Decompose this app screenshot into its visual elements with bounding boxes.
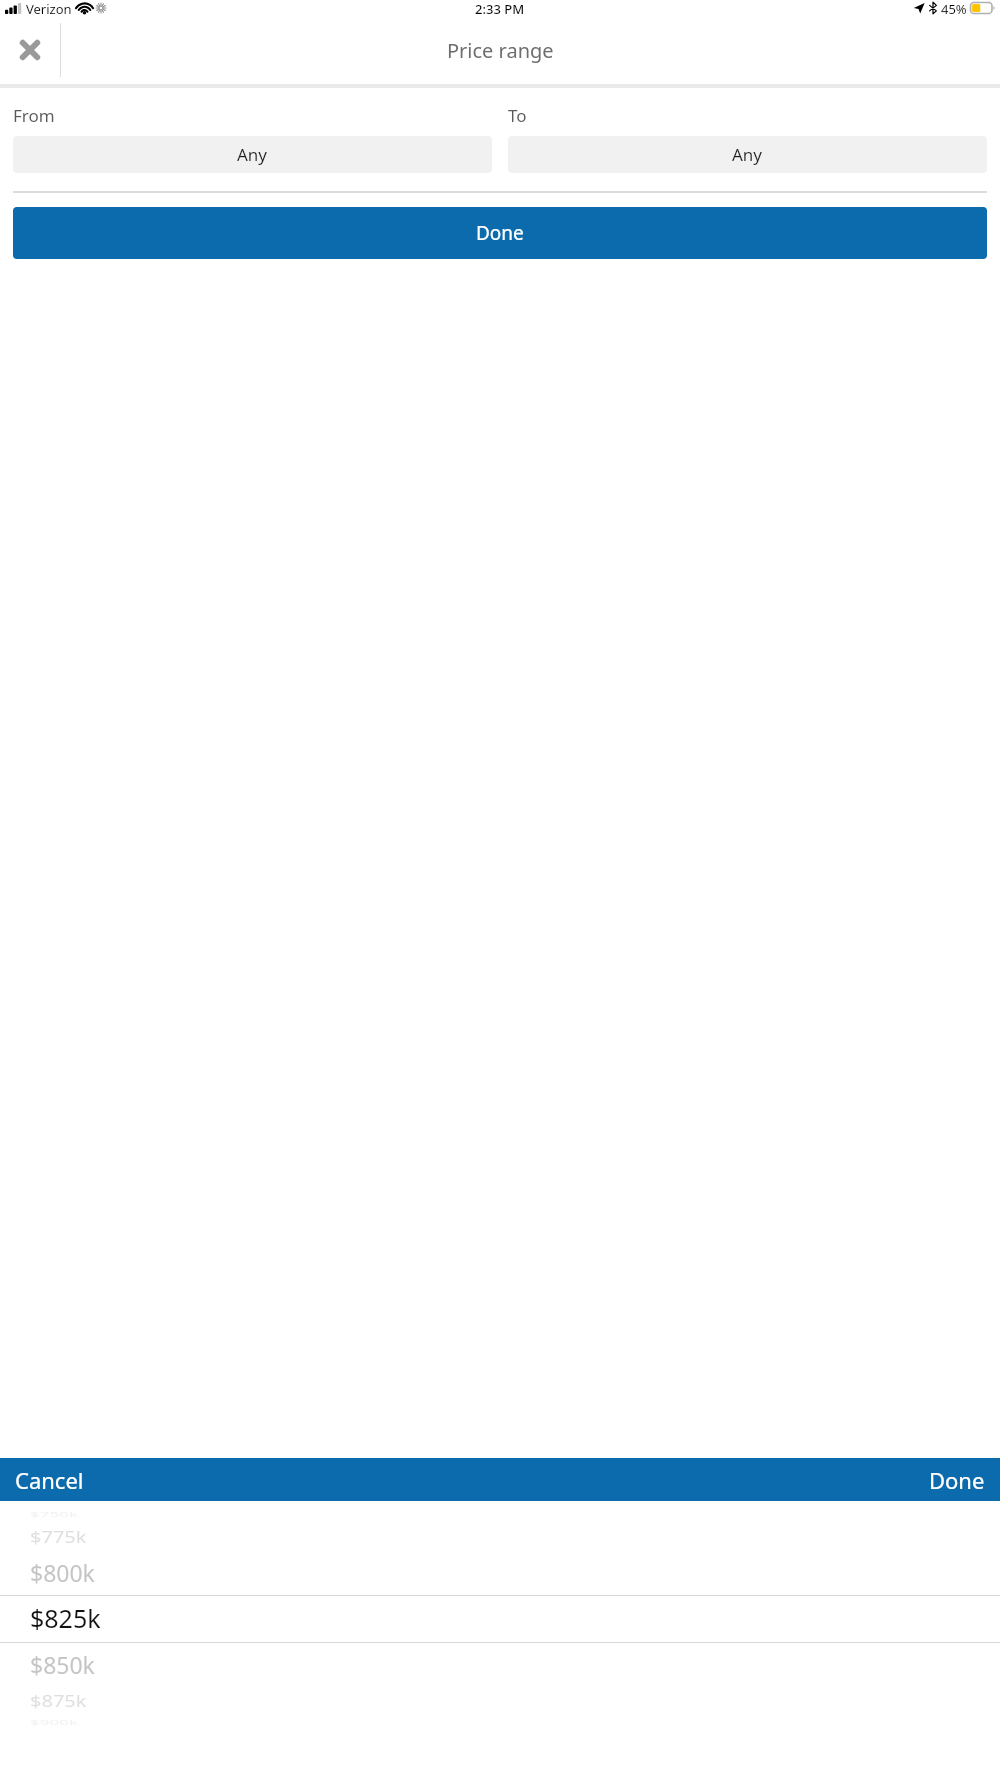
button[interactable]: Close — [0, 16, 60, 84]
staticText: Price range — [447, 37, 554, 64]
button[interactable]: Done — [914, 1458, 1000, 1501]
button[interactable]: Done — [13, 207, 987, 259]
staticText: Cancel — [15, 1465, 84, 1495]
staticText: Done — [476, 220, 524, 246]
staticText: $800k — [30, 1557, 95, 1588]
button[interactable]: $750k — [0, 1501, 1000, 1778]
staticText: $850k — [30, 1649, 95, 1680]
staticText: $900k — [30, 1717, 78, 1728]
staticText: $875k — [30, 1690, 87, 1711]
staticText: 45% — [941, 0, 967, 16]
staticText: 2:33 PM — [475, 0, 525, 16]
staticText: Verizon — [26, 0, 72, 16]
staticText: $825k — [30, 1601, 101, 1635]
staticText: Any — [237, 143, 268, 166]
staticText: $750k — [30, 1509, 78, 1520]
staticText: Done — [929, 1465, 985, 1495]
staticText: $775k — [30, 1526, 87, 1547]
button[interactable]: Any — [13, 136, 492, 173]
staticText: To — [508, 104, 527, 127]
button[interactable]: Cancel — [0, 1458, 99, 1501]
staticText: Any — [732, 143, 763, 166]
button[interactable]: Any — [508, 136, 987, 173]
staticText: From — [13, 104, 55, 127]
